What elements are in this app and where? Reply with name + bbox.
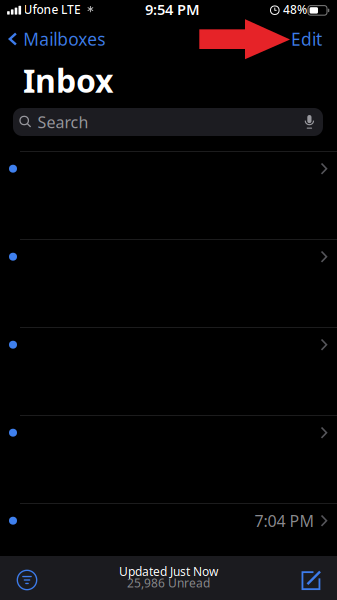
button[interactable]: Filter: [5, 558, 49, 600]
staticText: Edit: [291, 27, 322, 50]
button[interactable]: Search: [13, 108, 323, 136]
staticText: Mailboxes: [23, 27, 105, 50]
button[interactable]: 7:04 PM: [0, 504, 337, 592]
button[interactable]: [0, 416, 337, 504]
staticText: Ufone: [23, 1, 58, 17]
staticText: Inbox: [23, 59, 113, 101]
staticText: Updated Just Now: [119, 563, 218, 579]
staticText: Search: [37, 111, 88, 133]
button[interactable]: Compose: [289, 559, 333, 600]
button[interactable]: Mailboxes: [0, 24, 113, 54]
button[interactable]: [0, 328, 337, 416]
button[interactable]: Edit: [279, 24, 337, 54]
staticText: 48%: [283, 1, 307, 17]
staticText: 9:54 PM: [145, 0, 200, 19]
staticText: LTE: [61, 1, 81, 17]
staticText: 25,986 Unread: [127, 575, 210, 591]
button[interactable]: [0, 152, 337, 240]
staticText: 7:04 PM: [254, 510, 314, 531]
button[interactable]: [0, 240, 337, 328]
